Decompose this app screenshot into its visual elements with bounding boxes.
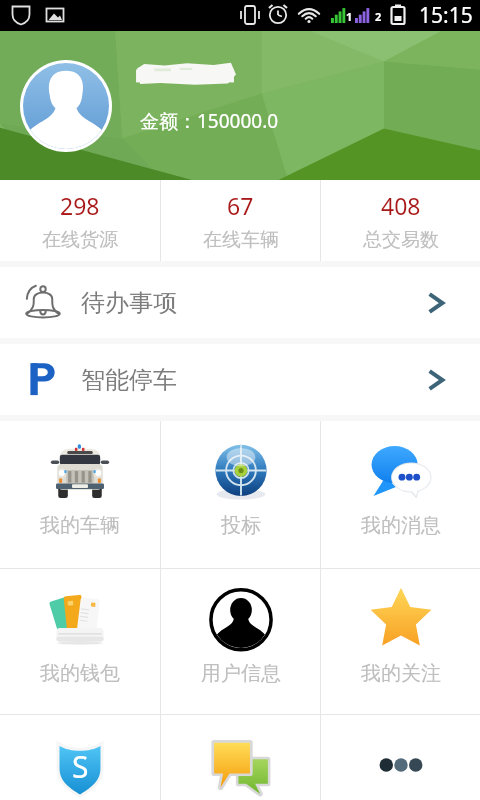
staticText: 298: [60, 190, 100, 221]
button[interactable]: 待办事项: [0, 267, 480, 338]
button[interactable]: 我的消息: [321, 421, 480, 568]
button[interactable]: 智能停车: [0, 344, 480, 415]
staticText: 我的消息: [361, 513, 441, 538]
staticText: 2: [375, 9, 382, 24]
button[interactable]: 408: [321, 180, 480, 261]
button[interactable]: 留言: [161, 715, 320, 800]
staticText: 智能停车: [81, 365, 177, 395]
staticText: 408: [381, 190, 421, 221]
button[interactable]: 用户信息: [161, 569, 320, 714]
staticText: 用户信息: [201, 661, 281, 686]
staticText: 在线车辆: [203, 228, 279, 252]
staticText: 我的关注: [361, 661, 441, 686]
button[interactable]: 298: [0, 180, 160, 261]
button[interactable]: 更多: [321, 715, 480, 800]
staticText: 投标: [221, 513, 261, 538]
staticText: 总交易数: [363, 228, 439, 252]
staticText: 我的车辆: [40, 513, 120, 538]
button[interactable]: 投标: [161, 421, 320, 568]
staticText: 1: [346, 9, 353, 24]
button[interactable]: 我的钱包: [0, 569, 160, 714]
staticText: S: [72, 746, 89, 787]
staticText: 待办事项: [81, 288, 177, 318]
staticText: 金额：150000.0: [140, 108, 279, 134]
staticText: 我的钱包: [40, 661, 120, 686]
staticText: 在线货源: [42, 228, 118, 252]
button[interactable]: 我的关注: [321, 569, 480, 714]
staticText: 67: [227, 190, 254, 221]
button[interactable]: 67: [161, 180, 320, 261]
staticText: 15:15: [419, 1, 473, 30]
button[interactable]: 我的车辆: [0, 421, 160, 568]
button[interactable]: 安全: [0, 715, 160, 800]
